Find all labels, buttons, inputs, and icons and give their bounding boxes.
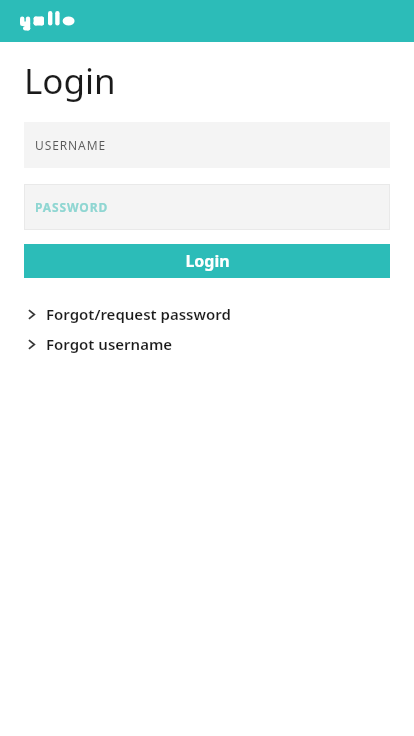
staticText: Forgot username [46,334,173,354]
staticText: Forgot/request password [46,304,231,324]
button[interactable]: Forgot/request password [0,303,414,325]
staticText: USERNAME [35,137,107,153]
button[interactable]: Forgot username [0,333,414,355]
staticText: Login [24,57,116,105]
other: yallo [20,10,88,32]
button[interactable]: Login [24,244,390,278]
button[interactable]: USERNAME [24,122,390,168]
staticText: PASSWORD [35,199,109,215]
staticText: Login [185,250,230,272]
button[interactable]: PASSWORD [24,184,390,230]
